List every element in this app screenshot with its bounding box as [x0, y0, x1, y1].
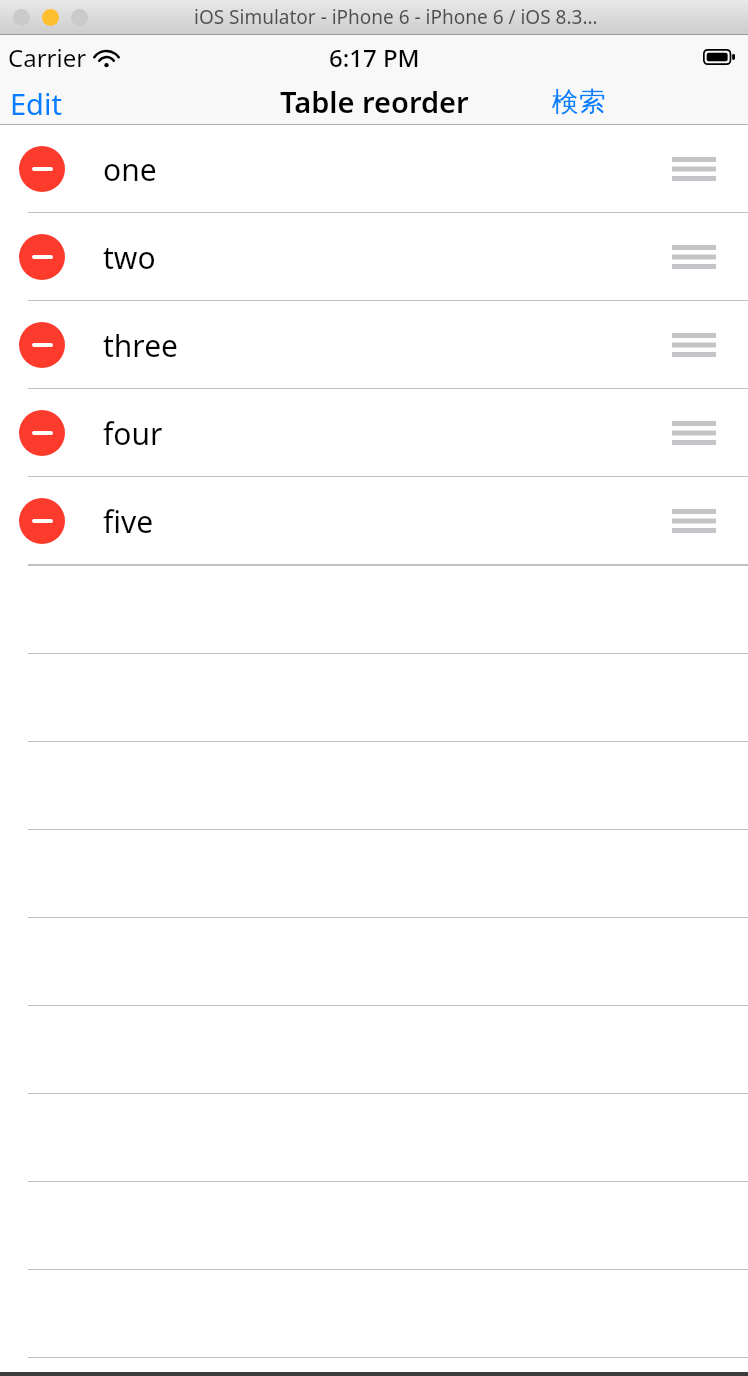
staticText: one — [103, 149, 157, 190]
button[interactable]: Close window — [13, 9, 30, 26]
button[interactable]: Reorder four — [672, 421, 716, 445]
staticText: Table reorder — [280, 82, 469, 121]
staticText: Carrier — [8, 41, 87, 74]
button[interactable]: Delete one — [19, 146, 65, 192]
button[interactable]: Delete five — [0, 477, 748, 565]
staticText: 6:17 PM — [329, 41, 420, 74]
staticText: three — [103, 325, 178, 366]
staticText: two — [103, 237, 156, 278]
button[interactable]: Reorder two — [672, 245, 716, 269]
button[interactable]: Zoom window — [71, 9, 88, 26]
button[interactable]: Reorder five — [672, 509, 716, 533]
staticText: four — [103, 413, 163, 454]
button[interactable]: Delete five — [19, 498, 65, 544]
button[interactable]: Delete two — [19, 234, 65, 280]
button[interactable]: Delete four — [0, 389, 748, 477]
button[interactable]: Delete four — [19, 410, 65, 456]
staticText: iOS Simulator - iPhone 6 - iPhone 6 / iO… — [194, 4, 598, 30]
staticText: five — [103, 501, 154, 542]
button[interactable]: Delete one — [0, 125, 748, 213]
button[interactable]: 検索 — [546, 79, 612, 124]
button[interactable]: Reorder three — [672, 333, 716, 357]
button[interactable]: Reorder one — [672, 157, 716, 181]
staticText: Edit — [10, 84, 62, 119]
button[interactable]: Delete three — [19, 322, 65, 368]
button[interactable]: Edit — [0, 79, 72, 124]
staticText: 検索 — [552, 85, 606, 118]
button[interactable]: Delete two — [0, 213, 748, 301]
button[interactable]: Delete three — [0, 301, 748, 389]
button[interactable]: Minimize window — [42, 9, 59, 26]
